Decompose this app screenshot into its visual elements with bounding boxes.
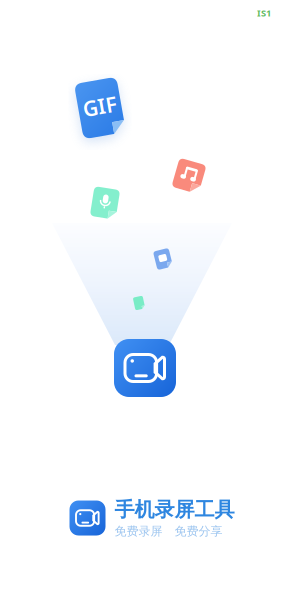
button[interactable]: 手机录屏工具 xyxy=(69,497,234,539)
staticText: GIF xyxy=(83,92,117,120)
staticText: IS1 xyxy=(257,7,271,19)
staticText: 手机录屏工具 xyxy=(114,497,234,522)
staticText: 免费录屏 免费分享 xyxy=(114,524,222,539)
